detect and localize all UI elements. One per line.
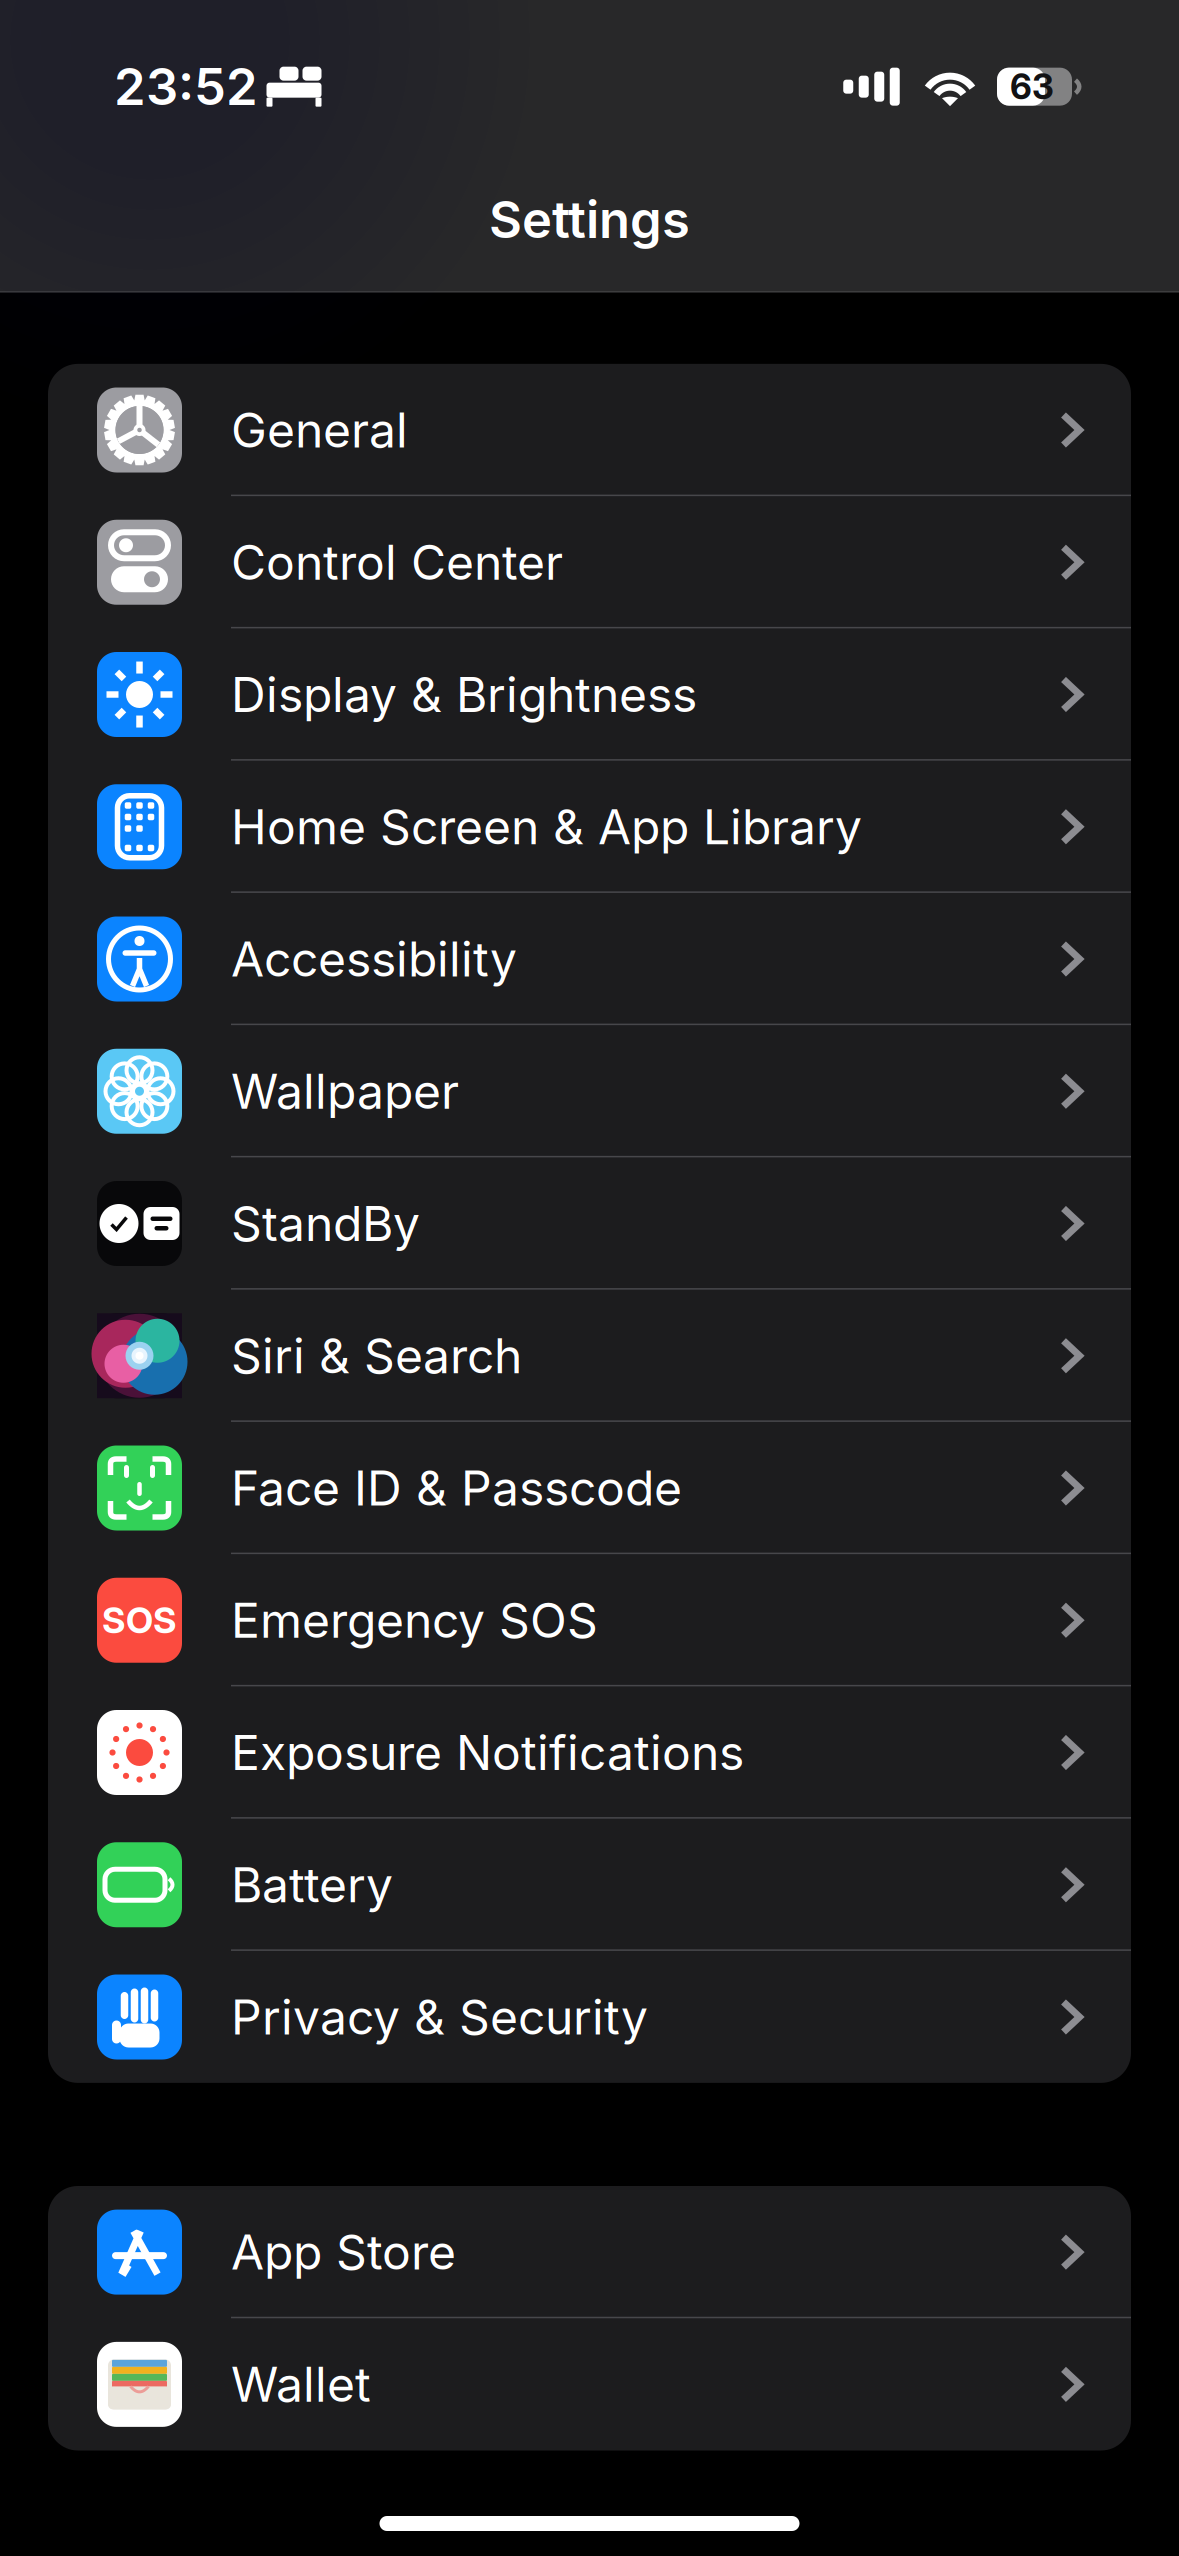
staticText: Display & Brightness bbox=[231, 665, 697, 724]
staticText: Control Center bbox=[231, 533, 563, 591]
button[interactable]: Privacy & Security bbox=[48, 1951, 1131, 2083]
staticText: Home Screen & App Library bbox=[231, 798, 862, 856]
button[interactable]: SOS bbox=[48, 1554, 1131, 1686]
staticText: Emergency SOS bbox=[231, 1591, 598, 1649]
staticText: SOS bbox=[102, 1598, 177, 1642]
button[interactable]: Wallet bbox=[48, 2318, 1131, 2450]
staticText: Privacy & Security bbox=[231, 1988, 648, 2046]
staticText: Face ID & Passcode bbox=[231, 1459, 682, 1517]
staticText: Settings bbox=[489, 189, 690, 250]
staticText: 63 bbox=[1010, 66, 1054, 108]
button[interactable]: StandBy bbox=[48, 1157, 1131, 1290]
button[interactable]: Accessibility bbox=[48, 893, 1131, 1025]
staticText: App Store bbox=[231, 2223, 456, 2281]
button[interactable]: App Store bbox=[48, 2186, 1131, 2318]
staticText: General bbox=[231, 401, 408, 459]
button[interactable]: Home Screen & App Library bbox=[48, 761, 1131, 893]
button[interactable]: General bbox=[48, 364, 1131, 496]
button[interactable]: Wallpaper bbox=[48, 1025, 1131, 1157]
button[interactable]: Display & Brightness bbox=[48, 628, 1131, 761]
button[interactable]: Face ID & Passcode bbox=[48, 1422, 1131, 1554]
staticText: Accessibility bbox=[231, 930, 517, 988]
button[interactable]: Exposure Notifications bbox=[48, 1686, 1131, 1819]
staticText: StandBy bbox=[231, 1194, 420, 1253]
staticText: Wallet bbox=[231, 2355, 371, 2413]
button[interactable]: Battery bbox=[48, 1819, 1131, 1951]
staticText: Wallpaper bbox=[231, 1062, 459, 1120]
staticText: Exposure Notifications bbox=[231, 1723, 744, 1782]
staticText: Battery bbox=[231, 1856, 393, 1914]
button[interactable]: Control Center bbox=[48, 496, 1131, 628]
button[interactable]: Siri & Search bbox=[48, 1290, 1131, 1422]
staticText: Siri & Search bbox=[231, 1327, 522, 1385]
staticText: 23:52 bbox=[114, 56, 258, 117]
